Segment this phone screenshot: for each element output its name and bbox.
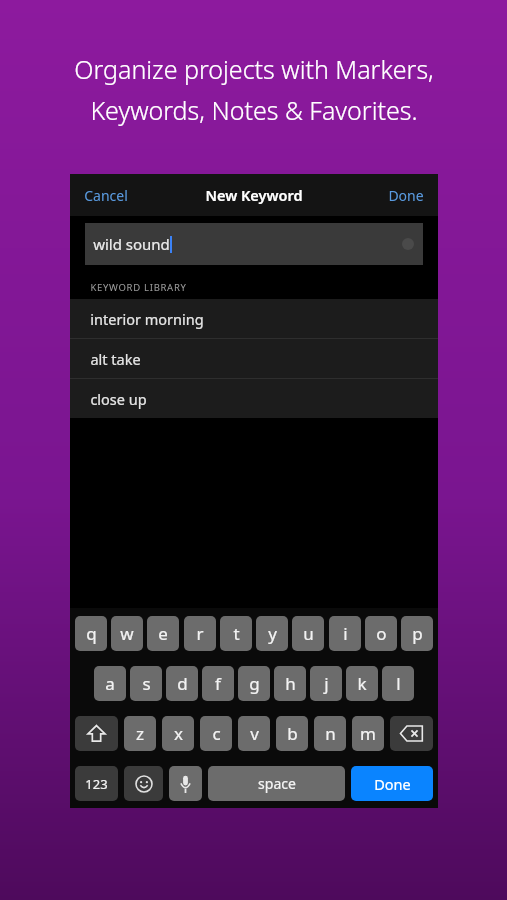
staticText: Done — [388, 186, 424, 205]
staticText: w — [120, 622, 134, 645]
staticText: Organize projects with Markers, — [74, 52, 434, 86]
staticText: k — [357, 672, 367, 695]
staticText: Keywords, Notes & Favorites. — [90, 93, 418, 127]
staticText: close up — [90, 389, 147, 409]
button[interactable]: close up — [70, 379, 438, 418]
staticText: space — [258, 774, 296, 793]
button[interactable]: i — [329, 616, 361, 651]
button[interactable]: a — [94, 666, 126, 701]
staticText: n — [325, 722, 336, 745]
button[interactable]: Backspace — [390, 716, 433, 751]
button[interactable]: Cancel — [70, 175, 142, 216]
button[interactable]: l — [382, 666, 414, 701]
button[interactable]: x — [162, 716, 194, 751]
button[interactable]: o — [365, 616, 397, 651]
button[interactable]: space — [208, 766, 345, 801]
button[interactable]: m — [352, 716, 384, 751]
button[interactable]: f — [202, 666, 234, 701]
button[interactable]: Done — [351, 766, 433, 801]
button[interactable]: v — [238, 716, 270, 751]
button[interactable]: p — [401, 616, 433, 651]
button[interactable]: Shift — [75, 716, 118, 751]
button[interactable]: t — [220, 616, 252, 651]
staticText: Done — [374, 774, 411, 794]
button[interactable]: n — [314, 716, 346, 751]
button[interactable]: s — [130, 666, 162, 701]
staticText: x — [174, 722, 183, 745]
staticText: t — [233, 622, 240, 645]
staticText: j — [324, 672, 329, 695]
staticText: m — [360, 722, 376, 745]
staticText: q — [86, 622, 97, 645]
staticText: u — [303, 622, 314, 645]
staticText: r — [196, 622, 204, 645]
button[interactable]: u — [292, 616, 324, 651]
staticText: g — [249, 672, 260, 695]
button[interactable]: wild sound — [85, 223, 423, 265]
staticText: d — [177, 672, 188, 695]
staticText: c — [212, 722, 221, 745]
staticText: a — [105, 672, 115, 695]
staticText: alt take — [90, 349, 141, 369]
staticText: p — [412, 622, 423, 645]
staticText: o — [376, 622, 387, 645]
button[interactable]: k — [346, 666, 378, 701]
staticText: e — [158, 622, 168, 645]
staticText: i — [343, 622, 348, 645]
button[interactable]: b — [276, 716, 308, 751]
staticText: f — [215, 672, 221, 695]
button[interactable]: alt take — [70, 339, 438, 378]
button[interactable]: q — [75, 616, 107, 651]
staticText: s — [142, 672, 151, 695]
staticText: wild sound — [93, 234, 170, 254]
button[interactable]: Emoji — [124, 766, 163, 801]
button[interactable]: c — [200, 716, 232, 751]
button[interactable]: j — [310, 666, 342, 701]
button[interactable]: y — [256, 616, 288, 651]
button[interactable]: z — [124, 716, 156, 751]
button[interactable]: h — [274, 666, 306, 701]
staticText: y — [268, 622, 277, 645]
staticText: l — [396, 672, 401, 695]
button[interactable]: interior morning — [70, 299, 438, 338]
button[interactable]: g — [238, 666, 270, 701]
staticText: b — [287, 722, 298, 745]
button[interactable]: e — [147, 616, 179, 651]
button[interactable]: 123 — [75, 766, 118, 801]
button[interactable]: Done — [374, 175, 438, 216]
staticText: New Keyword — [205, 185, 303, 205]
staticText: KEYWORD LIBRARY — [90, 281, 187, 294]
staticText: h — [285, 672, 296, 695]
staticText: z — [136, 722, 144, 745]
staticText: v — [250, 722, 259, 745]
staticText: interior morning — [90, 309, 204, 329]
button[interactable]: r — [184, 616, 216, 651]
button[interactable]: w — [111, 616, 143, 651]
button[interactable]: d — [166, 666, 198, 701]
button[interactable]: Voice input — [169, 766, 202, 801]
staticText: 123 — [85, 775, 108, 793]
staticText: Cancel — [84, 186, 128, 205]
